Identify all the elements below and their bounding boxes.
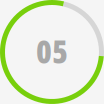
staticText: 05 (36, 29, 68, 73)
